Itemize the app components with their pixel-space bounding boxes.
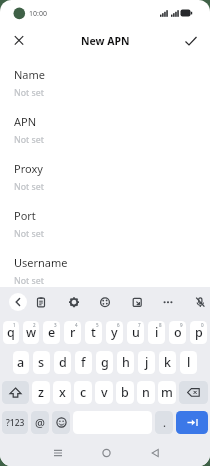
staticText: b: [121, 384, 129, 401]
button[interactable]: g: [96, 351, 113, 374]
staticText: r: [70, 324, 76, 341]
staticText: 0: [201, 322, 204, 328]
staticText: o: [174, 324, 182, 341]
staticText: 1: [13, 322, 16, 328]
staticText: s: [38, 354, 45, 371]
button[interactable]: [99, 296, 111, 308]
staticText: .: [163, 415, 166, 430]
staticText: Not set: [14, 275, 44, 287]
button[interactable]: x: [53, 381, 71, 404]
button[interactable]: l: [180, 351, 197, 374]
staticText: 10:00: [29, 9, 47, 19]
staticText: 5: [96, 322, 99, 328]
button[interactable]: z: [32, 381, 50, 404]
button[interactable]: [52, 411, 70, 434]
button[interactable]: Proxy: [14, 161, 210, 193]
staticText: v: [101, 384, 108, 401]
button[interactable]: i: [148, 321, 165, 344]
button[interactable]: Port: [14, 208, 210, 240]
button[interactable]: [183, 32, 199, 48]
staticText: y: [111, 324, 118, 341]
staticText: q: [7, 324, 15, 341]
staticText: t: [91, 324, 96, 341]
staticText: Proxy: [14, 161, 43, 176]
button[interactable]: .: [155, 411, 173, 434]
staticText: d: [59, 354, 67, 371]
button[interactable]: [48, 443, 68, 463]
staticText: Username: [14, 255, 68, 270]
staticText: Name: [14, 67, 46, 82]
button[interactable]: a: [13, 351, 29, 374]
button[interactable]: r: [64, 321, 81, 344]
staticText: l: [187, 354, 191, 371]
staticText: w: [26, 324, 37, 341]
button[interactable]: [179, 381, 208, 404]
button[interactable]: s: [33, 351, 50, 374]
staticText: n: [142, 384, 150, 401]
button[interactable]: [96, 443, 116, 463]
staticText: ?123: [6, 417, 25, 429]
staticText: g: [101, 354, 109, 371]
button[interactable]: @: [31, 411, 49, 434]
staticText: 9: [180, 322, 183, 328]
button[interactable]: d: [54, 351, 71, 374]
button[interactable]: [162, 296, 174, 308]
staticText: New APN: [81, 34, 130, 48]
button[interactable]: [176, 411, 208, 434]
staticText: 4: [75, 322, 78, 328]
staticText: m: [161, 384, 173, 401]
staticText: Not set: [14, 228, 44, 240]
button[interactable]: b: [116, 381, 134, 404]
staticText: Not set: [14, 134, 44, 146]
staticText: 7: [138, 322, 141, 328]
button[interactable]: o: [169, 321, 186, 344]
button[interactable]: f: [75, 351, 92, 374]
button[interactable]: w: [23, 321, 39, 344]
staticText: i: [155, 324, 159, 341]
button[interactable]: t: [85, 321, 102, 344]
button[interactable]: Name: [14, 67, 210, 99]
button[interactable]: [9, 293, 27, 311]
staticText: 2: [33, 322, 36, 328]
staticText: 3: [54, 322, 57, 328]
button[interactable]: k: [159, 351, 176, 374]
staticText: a: [17, 354, 25, 371]
staticText: f: [81, 354, 86, 371]
button[interactable]: u: [127, 321, 144, 344]
button[interactable]: h: [117, 351, 134, 374]
staticText: APN: [14, 114, 37, 129]
button[interactable]: [68, 296, 80, 308]
staticText: x: [59, 384, 66, 401]
button[interactable]: q: [3, 321, 19, 344]
button[interactable]: [35, 296, 47, 308]
staticText: p: [195, 324, 203, 341]
button[interactable]: m: [158, 381, 176, 404]
button[interactable]: ?123: [2, 411, 28, 434]
staticText: h: [122, 354, 130, 371]
button[interactable]: y: [106, 321, 123, 344]
button[interactable]: APN: [14, 114, 210, 146]
button[interactable]: [11, 32, 27, 48]
button[interactable]: [145, 443, 165, 463]
staticText: u: [132, 324, 140, 341]
button[interactable]: Username: [14, 255, 210, 287]
button[interactable]: [2, 381, 29, 404]
staticText: @: [35, 415, 45, 430]
staticText: Port: [14, 208, 36, 223]
staticText: 6: [117, 322, 120, 328]
staticText: z: [38, 384, 44, 401]
staticText: Not set: [14, 181, 44, 193]
button[interactable]: e: [43, 321, 60, 344]
button[interactable]: n: [137, 381, 155, 404]
staticText: Not set: [14, 87, 44, 99]
staticText: j: [145, 354, 149, 371]
button[interactable]: [194, 296, 206, 308]
button[interactable]: j: [138, 351, 155, 374]
staticText: e: [48, 324, 56, 341]
button[interactable]: v: [95, 381, 113, 404]
staticText: 8: [159, 322, 162, 328]
button[interactable]: p: [190, 321, 207, 344]
button[interactable]: c: [74, 381, 92, 404]
button[interactable]: [131, 296, 143, 308]
